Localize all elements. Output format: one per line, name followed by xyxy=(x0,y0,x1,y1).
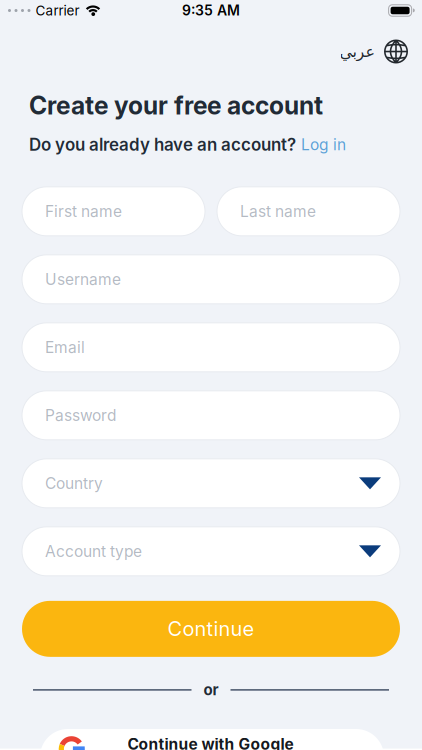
button[interactable]: Account type xyxy=(22,527,400,576)
staticText: Account type xyxy=(45,542,142,561)
staticText: Continue xyxy=(167,617,254,641)
button[interactable]: Email xyxy=(22,323,400,372)
staticText: or xyxy=(203,681,218,699)
button[interactable]: Switch language to Arabic xyxy=(339,39,408,63)
staticText: Last name xyxy=(240,202,316,221)
staticText: 9:35 AM xyxy=(182,2,240,19)
button[interactable]: Last name xyxy=(217,187,400,236)
button[interactable]: Country xyxy=(22,459,400,508)
button[interactable]: Username xyxy=(22,255,400,304)
staticText: Do you already have an account? xyxy=(29,134,296,155)
staticText: Continue with Google xyxy=(127,735,293,750)
button[interactable]: Log in xyxy=(301,135,346,154)
staticText: Carrier xyxy=(35,2,79,19)
button[interactable]: Password xyxy=(22,391,400,440)
staticText: Country xyxy=(45,474,103,493)
staticText: Log in xyxy=(301,135,346,154)
button[interactable]: First name xyxy=(22,187,205,236)
staticText: Password xyxy=(45,406,116,425)
staticText: Create your free account xyxy=(29,90,323,120)
staticText: First name xyxy=(45,202,122,221)
staticText: Username xyxy=(45,270,121,289)
button[interactable]: Continue xyxy=(22,601,400,657)
staticText: Email xyxy=(45,338,85,357)
button[interactable]: Continue with Google xyxy=(40,729,384,750)
staticText: عربي xyxy=(339,42,375,61)
